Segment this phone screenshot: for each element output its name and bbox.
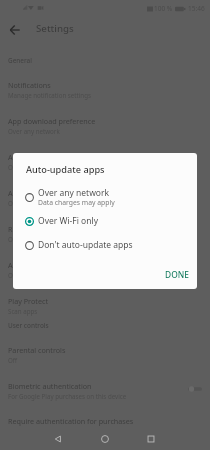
- staticText: Data charges may apply: [38, 198, 115, 207]
- staticText: Auto-play videos: [8, 188, 64, 198]
- staticText: Parental controls: [8, 345, 66, 355]
- staticText: General: [8, 56, 32, 65]
- staticText: Over Wi-Fi only: [8, 199, 52, 207]
- staticText: Biometric authentication: [8, 381, 92, 391]
- staticText: User controls: [8, 321, 49, 330]
- button[interactable]: App download preference: [0, 116, 210, 136]
- button[interactable]: Require authentication for purchases: [0, 416, 210, 429]
- staticText: Off: [8, 235, 18, 243]
- staticText: Scan apps: [8, 307, 38, 315]
- staticText: 100 %: [154, 4, 173, 13]
- button[interactable]: Auto-play videos: [0, 188, 210, 208]
- button[interactable]: Navigate up: [3, 18, 26, 41]
- staticText: Settings: [36, 22, 74, 35]
- staticText: Require authentication for purchases: [8, 416, 134, 426]
- staticText: Over any network: [8, 271, 60, 279]
- button[interactable]: Home: [94, 428, 116, 450]
- button[interactable]: Notifications: [0, 80, 210, 100]
- button[interactable]: Parental controls: [0, 345, 210, 365]
- staticText: Manage notification settings: [8, 91, 91, 99]
- staticText: Play Protect: [8, 296, 48, 306]
- staticText: Don't auto-update apps: [38, 239, 133, 251]
- staticText: DONE: [165, 269, 189, 280]
- button[interactable]: Remove installed apps: [0, 224, 210, 244]
- staticText: Auto-update apps: [8, 152, 69, 162]
- staticText: Over Wi-Fi only: [38, 215, 99, 227]
- staticText: Remove installed apps: [8, 224, 84, 234]
- staticText: Notifications: [8, 80, 51, 90]
- button[interactable]: Biometric authentication: [0, 381, 210, 401]
- button[interactable]: Auto-update apps: [0, 152, 210, 172]
- staticText: Over Wi-Fi only: [8, 163, 52, 171]
- staticText: App download preference: [8, 116, 96, 126]
- staticText: Over any network: [38, 187, 110, 199]
- button[interactable]: Don't auto-update apps: [13, 235, 197, 255]
- staticText: Auto-update apps: [26, 163, 105, 176]
- button[interactable]: Over Wi-Fi only: [13, 211, 197, 231]
- button[interactable]: DONE: [159, 264, 195, 285]
- staticText: App install preference: [8, 260, 82, 270]
- button[interactable]: App install preference: [0, 260, 210, 280]
- staticText: 15:46: [188, 4, 205, 13]
- button[interactable]: Recent apps: [140, 428, 162, 450]
- button[interactable]: Over any network: [13, 185, 197, 209]
- staticText: Over any network: [8, 127, 60, 135]
- staticText: Off: [8, 356, 18, 364]
- button[interactable]: Back: [47, 428, 69, 450]
- staticText: For Google Play purchases on this device: [8, 392, 127, 400]
